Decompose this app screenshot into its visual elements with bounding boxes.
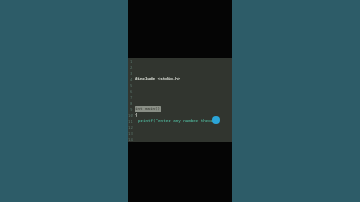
staticText: 10 [128, 113, 133, 118]
staticText: 7 [130, 95, 133, 100]
staticText: 2 [130, 65, 133, 70]
staticText: { [135, 112, 138, 118]
staticText: #include <stdio.h> [135, 76, 181, 82]
staticText: int main() [135, 106, 161, 112]
staticText: 12 [128, 125, 133, 130]
staticText: 1 [130, 59, 133, 64]
staticText: 3 [130, 71, 133, 76]
button[interactable]: 1 [128, 0, 232, 202]
staticText: 14 [128, 137, 133, 142]
staticText: 9 [130, 107, 133, 112]
staticText: 4 [130, 77, 133, 82]
other: Touch indicator [212, 116, 220, 124]
staticText: 5 [130, 83, 133, 88]
staticText: 13 [128, 131, 133, 136]
staticText: printf("enter any number through keyboar… [138, 118, 235, 124]
staticText: 11 [128, 119, 133, 124]
staticText: 6 [130, 89, 133, 94]
staticText: 8 [130, 101, 133, 106]
